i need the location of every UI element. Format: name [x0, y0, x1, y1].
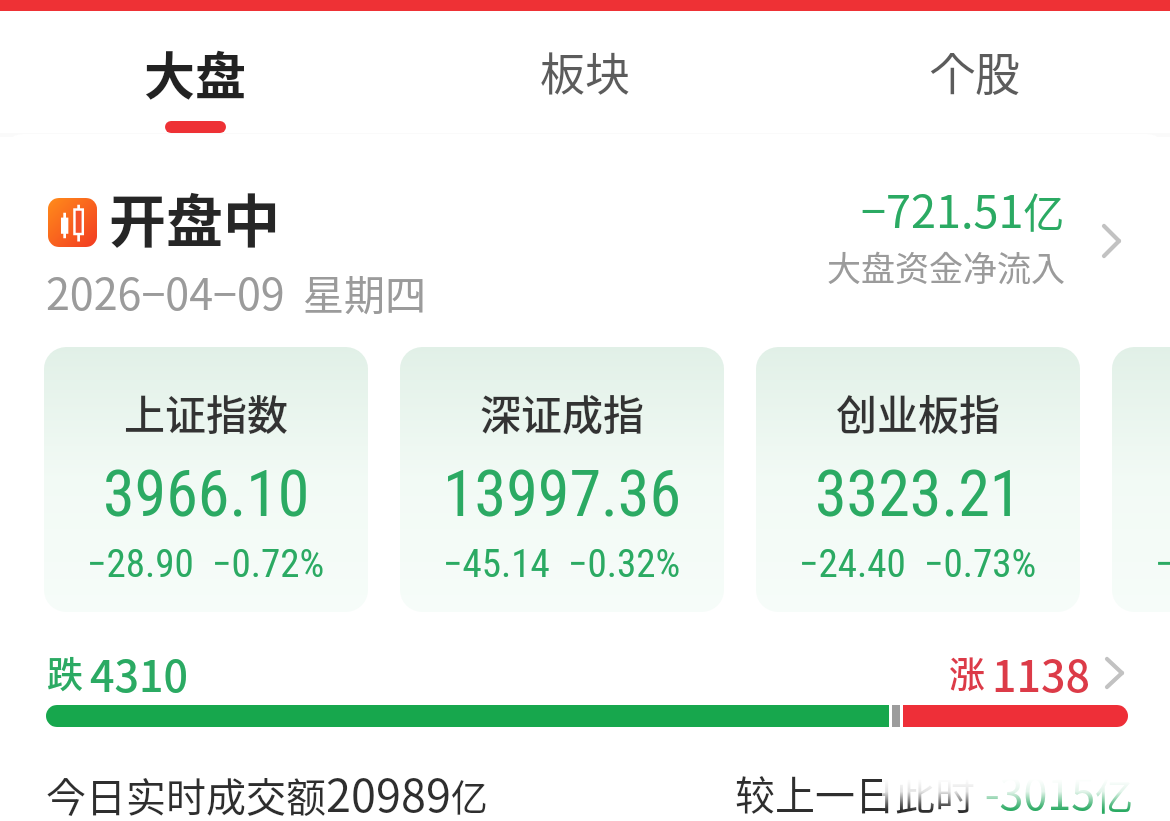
staticText: 较上一日此时 -3015亿 [735, 760, 1134, 821]
staticText: 今日实时成交额20989亿 [46, 760, 488, 821]
button[interactable]: 北证50 [1112, 347, 1170, 612]
button[interactable]: 上证指数 [44, 347, 368, 612]
button[interactable]: 创业板指 [756, 347, 1080, 612]
staticText: 13997.36 [443, 457, 682, 532]
staticText: 创业板指 [836, 382, 1000, 441]
staticText: 涨 [949, 646, 986, 698]
button[interactable]: 涨跌家数详情 [1095, 647, 1134, 699]
staticText: 板块 [540, 39, 631, 104]
staticText: 大盘 [144, 36, 247, 110]
staticText: −0.73% [924, 541, 1037, 587]
staticText: −28.90 [87, 541, 194, 587]
button[interactable]: 大盘 [75, 11, 315, 135]
staticText: 开盘中 [109, 176, 280, 259]
staticText: 3966.10 [103, 457, 310, 532]
staticText: −45.14 [443, 541, 550, 587]
button[interactable]: 资金流向详情 [1092, 214, 1131, 268]
staticText: −24.40 [799, 541, 906, 587]
staticText: 2026−04−09 星期四 [46, 260, 427, 322]
staticText: −0.72% [212, 541, 325, 587]
staticText: 上证指数 [124, 382, 288, 441]
staticText: 4310 [90, 642, 189, 704]
staticText: −721.51亿 [861, 176, 1065, 241]
staticText: 3323.21 [815, 457, 1022, 532]
button[interactable]: 板块 [465, 11, 705, 135]
staticText: 个股 [930, 39, 1021, 104]
button[interactable]: −721.51亿 [790, 180, 1065, 295]
button[interactable]: 个股 [855, 11, 1095, 135]
staticText: 跌 [47, 646, 84, 698]
button[interactable]: 跌 [0, 640, 1170, 740]
staticText: 深证成指 [480, 382, 644, 441]
button[interactable]: 深证成指 [400, 347, 724, 612]
staticText: −16.40 [1155, 541, 1170, 587]
staticText: 1138 [992, 642, 1091, 704]
staticText: −0.32% [568, 541, 681, 587]
staticText: 大盘资金净流入 [827, 242, 1065, 291]
